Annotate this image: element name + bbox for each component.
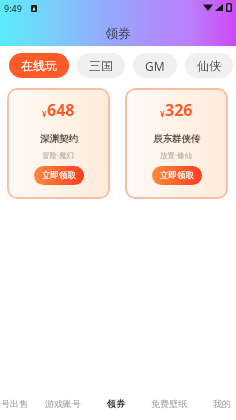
staticText: 辰东群侠传	[153, 133, 201, 145]
button[interactable]: 免费壁纸	[142, 386, 195, 420]
staticText: GM	[145, 58, 165, 74]
button[interactable]: 账号出售	[0, 386, 36, 420]
staticText: 三国	[89, 58, 113, 73]
button[interactable]: 仙侠	[185, 53, 233, 78]
staticText: 我的	[213, 398, 231, 409]
staticText: ¥	[160, 108, 165, 119]
staticText: 领券	[105, 25, 131, 41]
staticText: 冒险·魔幻	[42, 150, 75, 160]
staticText: 仙侠	[197, 58, 221, 73]
staticText: 648	[47, 99, 75, 121]
button[interactable]: 游戏账号	[36, 386, 89, 420]
staticText: 9:49	[4, 2, 22, 14]
button[interactable]: 领券	[89, 386, 142, 420]
button[interactable]: GM	[133, 53, 177, 78]
staticText: 放置·修仙	[160, 150, 193, 160]
staticText: 账号出售	[0, 398, 28, 409]
staticText: 游戏账号	[45, 398, 81, 409]
staticText: ¥	[42, 108, 47, 119]
button[interactable]: ¥	[125, 88, 228, 199]
staticText: 领券	[107, 398, 125, 409]
staticText: 深渊契约	[40, 133, 78, 145]
staticText: 免费壁纸	[151, 398, 187, 409]
staticText: 326	[165, 99, 193, 121]
button[interactable]: 三国	[77, 53, 125, 78]
button[interactable]: 立即领取	[152, 166, 202, 185]
staticText: 立即领取	[160, 170, 194, 181]
button[interactable]: 我的	[195, 386, 236, 420]
staticText: 立即领取	[42, 170, 76, 181]
staticText: 在线玩	[21, 58, 57, 73]
button[interactable]: ¥	[7, 88, 110, 199]
button[interactable]: 立即领取	[34, 166, 84, 185]
button[interactable]: 在线玩	[9, 53, 69, 78]
